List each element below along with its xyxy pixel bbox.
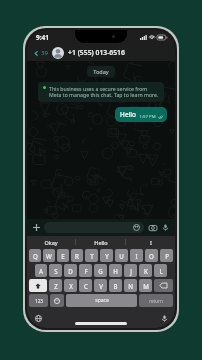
button[interactable]: Back [32, 49, 49, 57]
button[interactable]: Hello [76, 236, 125, 248]
button[interactable]: F [79, 264, 92, 277]
staticText: S [54, 267, 58, 275]
other: Back [33, 50, 40, 57]
staticText: I [150, 239, 152, 246]
button[interactable]: M [139, 279, 152, 292]
button[interactable]: Numbers [29, 294, 48, 307]
staticText: R [75, 252, 79, 260]
button[interactable]: O [145, 249, 158, 262]
button[interactable]: Y [100, 249, 113, 262]
other: Sticker [133, 224, 140, 231]
button[interactable]: This business uses a secure service from… [38, 82, 164, 102]
button[interactable]: Q [29, 249, 41, 262]
button[interactable]: Voice message [160, 222, 171, 233]
button[interactable]: B [109, 279, 122, 292]
button[interactable]: J [124, 264, 137, 277]
button[interactable]: U [115, 249, 128, 262]
staticText: return [149, 298, 163, 304]
staticText: 9:41 [36, 33, 49, 42]
staticText: Z [54, 282, 58, 290]
button[interactable]: Shift [29, 279, 47, 292]
staticText: W [46, 252, 52, 260]
staticText: This business uses a secure service from… [49, 85, 159, 99]
staticText: Hello [120, 110, 136, 119]
staticText: V [99, 282, 103, 290]
staticText: D [68, 267, 73, 275]
button[interactable]: X [64, 279, 77, 292]
button[interactable]: V [94, 279, 107, 292]
button[interactable]: Sticker [44, 222, 144, 233]
button[interactable]: I [130, 249, 143, 262]
staticText: P [165, 252, 169, 260]
button[interactable]: D [64, 264, 77, 277]
staticText: I [135, 252, 138, 260]
button[interactable]: Emoji [50, 294, 64, 307]
staticText: E [61, 252, 65, 260]
staticText: +1 (555) 013-6516 [68, 48, 125, 57]
staticText: 39 [41, 49, 48, 57]
staticText: K [144, 267, 148, 275]
button[interactable]: P [160, 249, 173, 262]
staticText: C [84, 282, 88, 290]
button[interactable]: S [49, 264, 62, 277]
staticText: G [98, 267, 103, 275]
button[interactable]: W [43, 249, 55, 262]
staticText: T [90, 252, 94, 260]
button[interactable]: C [79, 279, 92, 292]
button[interactable]: L [154, 264, 167, 277]
staticText: A [39, 267, 43, 275]
button[interactable]: N [124, 279, 137, 292]
staticText: 1:57 PM [139, 113, 156, 119]
button[interactable]: Camera [147, 222, 158, 233]
staticText: 123 [35, 298, 43, 304]
staticText: O [149, 252, 154, 260]
button[interactable]: G [94, 264, 107, 277]
staticText: F [84, 267, 88, 275]
button[interactable]: Okay [27, 236, 75, 248]
staticText: H [113, 267, 118, 275]
staticText: B [113, 282, 118, 290]
button[interactable]: R [71, 249, 83, 262]
button[interactable]: Change keyboard [33, 313, 43, 323]
button[interactable]: K [139, 264, 152, 277]
button[interactable]: I [126, 236, 175, 248]
staticText: J [130, 267, 132, 275]
staticText: L [159, 267, 163, 275]
staticText: N [128, 282, 133, 290]
staticText: Today [93, 68, 109, 75]
button[interactable]: H [109, 264, 122, 277]
staticText: Q [33, 252, 38, 260]
staticText: X [69, 282, 73, 290]
button[interactable]: Return [139, 294, 173, 307]
staticText: U [119, 252, 124, 260]
button[interactable]: Dictation [159, 313, 169, 323]
button[interactable]: E [57, 249, 69, 262]
button[interactable]: A [35, 264, 47, 277]
button[interactable]: Z [49, 279, 62, 292]
staticText: space [95, 297, 109, 304]
staticText: Okay [44, 239, 58, 246]
button[interactable]: Backspace [154, 279, 173, 292]
button[interactable]: Space [66, 294, 137, 307]
button[interactable]: Attach [31, 222, 42, 233]
button[interactable]: T [85, 249, 98, 262]
staticText: M [143, 282, 149, 290]
staticText: Y [105, 252, 109, 260]
staticText: Hello [94, 239, 108, 246]
